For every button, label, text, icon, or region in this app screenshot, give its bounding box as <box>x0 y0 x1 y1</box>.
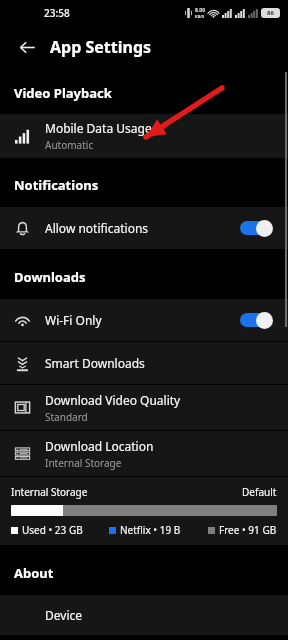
staticText: Notifications <box>14 176 99 194</box>
staticText: Mobile Data Usage <box>45 120 152 136</box>
button[interactable]: Download Location <box>0 431 288 476</box>
staticText: Wi-Fi Only <box>45 312 102 328</box>
staticText: Downloads <box>14 268 86 286</box>
staticText: App Settings <box>50 36 152 58</box>
staticText: Video Playback <box>14 84 112 102</box>
staticText: Used • 23 GB <box>22 523 83 537</box>
staticText: About <box>14 564 54 582</box>
staticText: Netflix • 19 B <box>120 523 181 537</box>
staticText: Internal Storage <box>45 456 122 470</box>
staticText: Standard <box>45 410 88 424</box>
staticText: Device <box>45 607 83 623</box>
staticText: Download Location <box>45 438 154 454</box>
staticText: KB/S <box>195 14 205 19</box>
staticText: 86 <box>267 9 274 17</box>
staticText: Download Video Quality <box>45 392 181 408</box>
button[interactable]: Wi-Fi Only <box>0 299 288 341</box>
button[interactable]: Back <box>10 30 44 64</box>
staticText: Automatic <box>45 138 94 152</box>
button[interactable]: Allow notifications <box>0 207 288 249</box>
staticText: Smart Downloads <box>45 355 145 371</box>
button[interactable]: Toggle <box>239 217 279 239</box>
staticText: 23:58 <box>44 6 70 20</box>
staticText: Default <box>242 485 277 499</box>
button[interactable]: Download Video Quality <box>0 385 288 430</box>
staticText: Allow notifications <box>45 220 149 236</box>
button[interactable]: Device <box>0 595 288 635</box>
staticText: Internal Storage <box>11 485 88 499</box>
staticText: Free • 91 GB <box>219 523 277 537</box>
button[interactable]: Toggle <box>239 309 279 331</box>
button[interactable]: Mobile Data Usage <box>0 114 288 158</box>
staticText: 8.00 <box>195 7 205 14</box>
button[interactable]: Smart Downloads <box>0 342 288 384</box>
